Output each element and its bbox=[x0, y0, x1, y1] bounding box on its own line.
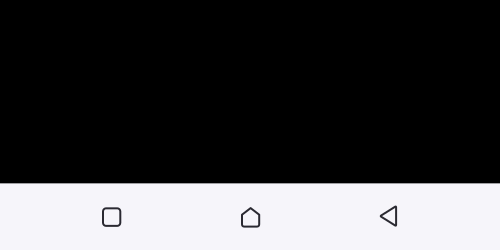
button[interactable]: Back bbox=[342, 183, 434, 249]
button[interactable]: Recent apps bbox=[66, 184, 158, 250]
button[interactable]: Home bbox=[205, 184, 297, 250]
